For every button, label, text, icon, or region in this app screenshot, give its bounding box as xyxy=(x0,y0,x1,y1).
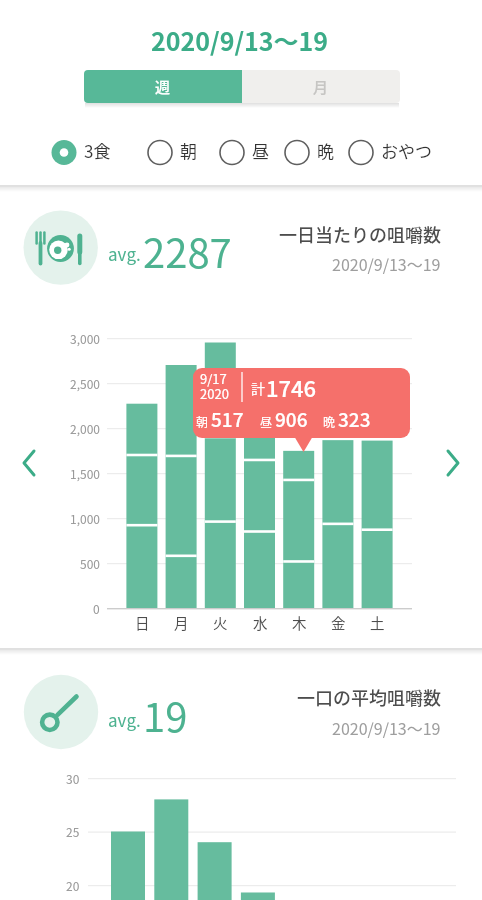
button[interactable]: おやつ xyxy=(348,136,432,165)
staticText: 517 xyxy=(211,405,244,433)
staticText: 2020/9/13～19 xyxy=(332,716,441,739)
button[interactable]: 月 xyxy=(242,70,400,103)
staticText: 906 xyxy=(275,405,308,433)
staticText: 水 xyxy=(253,612,268,633)
button[interactable]: 週 xyxy=(84,70,242,103)
button[interactable]: 晩 xyxy=(284,136,334,165)
button[interactable] xyxy=(440,448,464,478)
staticText: 3食 xyxy=(84,138,111,163)
staticText: 昼 xyxy=(260,413,273,430)
staticText: 30 xyxy=(66,770,80,787)
staticText: avg. xyxy=(108,241,141,266)
staticText: 323 xyxy=(338,405,371,433)
staticText: 金 xyxy=(331,612,346,633)
button[interactable]: 3食 xyxy=(51,136,111,165)
staticText: 朝 xyxy=(196,413,209,430)
staticText: 木 xyxy=(292,612,307,633)
staticText: 日 xyxy=(135,612,150,633)
staticText: 3,000 xyxy=(70,330,100,347)
staticText: 朝 xyxy=(180,138,197,163)
staticText: 一口の平均咀嚼数 xyxy=(297,684,441,710)
staticText: 9/17 xyxy=(200,369,227,388)
staticText: 1,500 xyxy=(70,465,100,482)
staticText: 月 xyxy=(174,612,189,633)
staticText: avg. xyxy=(108,707,141,732)
staticText: 500 xyxy=(80,555,100,572)
staticText: 月 xyxy=(313,76,329,98)
staticText: 計 xyxy=(251,378,265,398)
staticText: 2020 xyxy=(200,384,229,403)
staticText: 20 xyxy=(66,877,80,894)
staticText: 土 xyxy=(370,612,385,633)
staticText: 1,000 xyxy=(70,510,100,527)
staticText: 2287 xyxy=(143,222,232,280)
button[interactable]: 朝 xyxy=(147,136,197,165)
staticText: 一日当たりの咀嚼数 xyxy=(279,221,441,247)
staticText: 0 xyxy=(93,600,100,617)
staticText: 晩 xyxy=(317,138,334,163)
button[interactable]: 昼 xyxy=(219,136,269,165)
staticText: おやつ xyxy=(381,138,432,163)
staticText: 週 xyxy=(155,76,171,98)
staticText: 2,000 xyxy=(70,420,100,437)
staticText: 25 xyxy=(66,823,80,840)
staticText: 火 xyxy=(213,612,228,633)
staticText: 2020/9/13～19 xyxy=(332,252,441,275)
staticText: 2020/9/13～19 xyxy=(151,22,329,58)
staticText: 昼 xyxy=(252,138,269,163)
button[interactable] xyxy=(18,448,42,478)
staticText: 1746 xyxy=(266,371,317,403)
staticText: 2,500 xyxy=(70,375,100,392)
staticText: 晩 xyxy=(323,413,336,430)
staticText: 19 xyxy=(143,686,188,744)
